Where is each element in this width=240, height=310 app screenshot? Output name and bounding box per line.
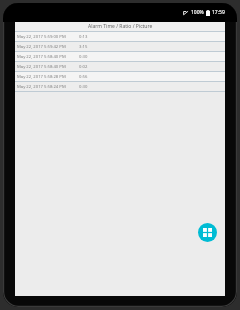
staticText: 0:30 [79, 84, 88, 90]
staticText: May 22, 2017 5:58:28 PM [17, 74, 66, 80]
staticText: May 22, 2017 5:58:24 PM [17, 84, 66, 90]
button[interactable]: May 22, 2017 5:58:24 PM [15, 82, 225, 91]
staticText: May 22, 2017 5:59:00 PM [17, 34, 66, 40]
button[interactable]: May 22, 2017 5:58:40 PM [15, 52, 225, 61]
staticText: May 22, 2017 5:58:40 PM [17, 64, 66, 70]
button[interactable]: Show pictures grid [198, 223, 217, 242]
staticText: 17:59 [212, 9, 225, 16]
staticText: 100% [191, 9, 204, 16]
staticText: 3:15 [79, 44, 88, 50]
button[interactable]: May 22, 2017 5:58:28 PM [15, 72, 225, 81]
staticText: 0:56 [79, 74, 88, 80]
button[interactable]: May 22, 2017 5:59:00 PM [15, 32, 225, 41]
staticText: May 22, 2017 5:58:40 PM [17, 54, 66, 60]
staticText: 0:30 [79, 54, 88, 60]
button[interactable]: May 22, 2017 5:58:40 PM [15, 62, 225, 71]
button[interactable]: May 22, 2017 5:59:42 PM [15, 42, 225, 51]
staticText: 0:13 [79, 34, 88, 40]
staticText: 0:02 [79, 64, 88, 70]
staticText: May 22, 2017 5:59:42 PM [17, 44, 66, 50]
staticText: Alarm Time / Ratio / Picture [88, 23, 153, 30]
